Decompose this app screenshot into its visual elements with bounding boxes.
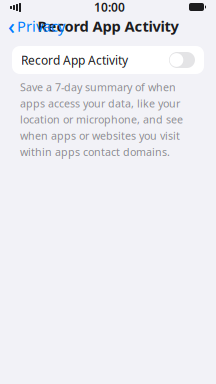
staticText: Record App Activity bbox=[21, 52, 128, 68]
button[interactable]: Record App Activity bbox=[12, 46, 204, 74]
staticText: ‹ bbox=[8, 12, 15, 40]
button[interactable]: ‹ bbox=[2, 8, 71, 44]
staticText: 10:00 bbox=[94, 0, 125, 15]
staticText: Record App Activity bbox=[37, 16, 178, 36]
staticText: Privacy bbox=[17, 16, 65, 36]
staticText: Save a 7-day summary of when apps access… bbox=[20, 80, 183, 159]
